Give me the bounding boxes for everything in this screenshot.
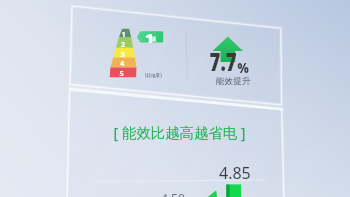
button[interactable] xyxy=(0,0,350,197)
